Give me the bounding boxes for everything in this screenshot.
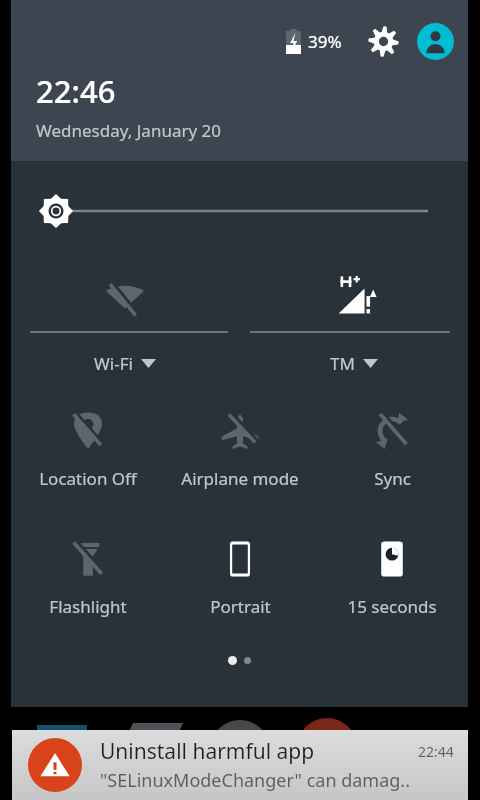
button[interactable]: Brightness: [11, 161, 468, 257]
staticText: 39%: [308, 30, 342, 53]
staticText: Location Off: [39, 467, 137, 490]
staticText: Sync: [374, 467, 411, 490]
button[interactable]: Settings: [360, 18, 406, 64]
staticText: Uninstall harmful app: [100, 737, 418, 766]
staticText: 22:44: [418, 742, 454, 761]
staticText: Portrait: [210, 595, 271, 618]
button[interactable]: Sync: [316, 395, 468, 523]
staticText: Wi-Fi: [94, 352, 133, 375]
staticText: TM: [330, 352, 355, 375]
button[interactable]: Wi-Fi: [11, 257, 239, 395]
staticText: Wednesday, January 20: [36, 119, 221, 142]
button[interactable]: User account: [412, 18, 458, 64]
button[interactable]: 15 seconds: [316, 523, 468, 651]
button[interactable]: Mobile data: [239, 257, 468, 395]
button[interactable]: Location Off: [11, 395, 164, 523]
staticText: Flashlight: [49, 595, 127, 618]
staticText: 15 seconds: [347, 595, 437, 618]
button[interactable]: Airplane mode: [164, 395, 316, 523]
button[interactable]: Portrait: [164, 523, 316, 651]
button[interactable]: Flashlight: [11, 523, 164, 651]
staticText: Airplane mode: [181, 467, 299, 490]
staticText: "SELinuxModeChanger" can damag..: [100, 768, 410, 793]
staticText: 22:46: [36, 70, 116, 112]
button[interactable]: 22:46: [36, 70, 221, 142]
button[interactable]: Uninstall harmful app: [12, 730, 468, 800]
